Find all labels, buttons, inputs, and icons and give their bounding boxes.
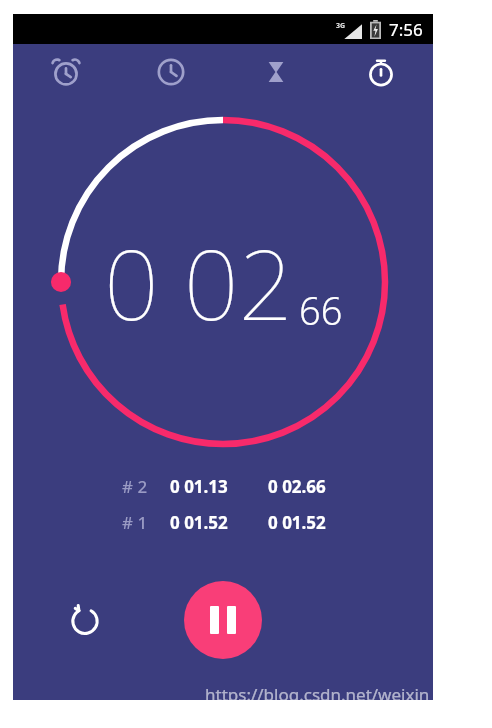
button[interactable]: # 2 [13, 472, 433, 500]
button[interactable]: Timer [223, 44, 328, 100]
staticText: 0 01.13 [170, 475, 228, 498]
button[interactable]: # 1 [13, 508, 433, 536]
button[interactable]: Stopwatch [328, 44, 433, 100]
staticText: 7:56 [389, 18, 423, 41]
staticText: 0 02.66 [268, 475, 326, 498]
staticText: 0 02 [104, 217, 294, 348]
button[interactable]: Pause [184, 581, 262, 659]
staticText: 0 01.52 [170, 511, 228, 534]
button[interactable]: Reset [59, 594, 111, 646]
staticText: 0 01.52 [268, 511, 326, 534]
staticText: https://blog.csdn.net/weixin_44 [205, 683, 457, 706]
button[interactable]: Alarm [13, 44, 118, 100]
staticText: # 1 [122, 511, 148, 534]
staticText: 3G [336, 21, 346, 31]
staticText: 66 [299, 284, 343, 336]
button[interactable]: Clock [118, 44, 223, 100]
staticText: # 2 [122, 475, 148, 498]
